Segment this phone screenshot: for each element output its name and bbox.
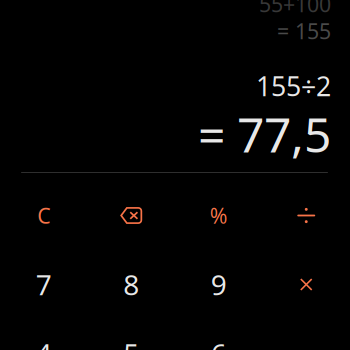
staticText: C (37, 201, 50, 230)
staticText: 6 (211, 335, 227, 350)
button[interactable]: Delete (87, 181, 175, 250)
staticText: = 77,5 (198, 102, 331, 166)
button[interactable]: 4 (0, 319, 87, 350)
button[interactable]: 5 (87, 319, 175, 350)
button[interactable]: 6 (175, 319, 262, 350)
staticText: 55+100 (259, 0, 331, 18)
staticText: % (210, 201, 228, 230)
staticText: 8 (123, 266, 139, 303)
staticText: 4 (36, 335, 52, 350)
staticText: = 155 (277, 17, 331, 45)
button[interactable]: 7 (0, 250, 87, 319)
button[interactable]: Divide (262, 181, 350, 250)
button[interactable]: Percent (175, 181, 262, 250)
staticText: 5 (123, 335, 139, 350)
staticText: 7 (36, 266, 52, 303)
button[interactable]: 9 (175, 250, 262, 319)
staticText: 155÷2 (256, 68, 331, 104)
button[interactable]: Multiply (262, 250, 350, 319)
button[interactable]: Clear (0, 181, 87, 250)
staticText: 9 (211, 266, 227, 303)
button[interactable]: 8 (87, 250, 175, 319)
